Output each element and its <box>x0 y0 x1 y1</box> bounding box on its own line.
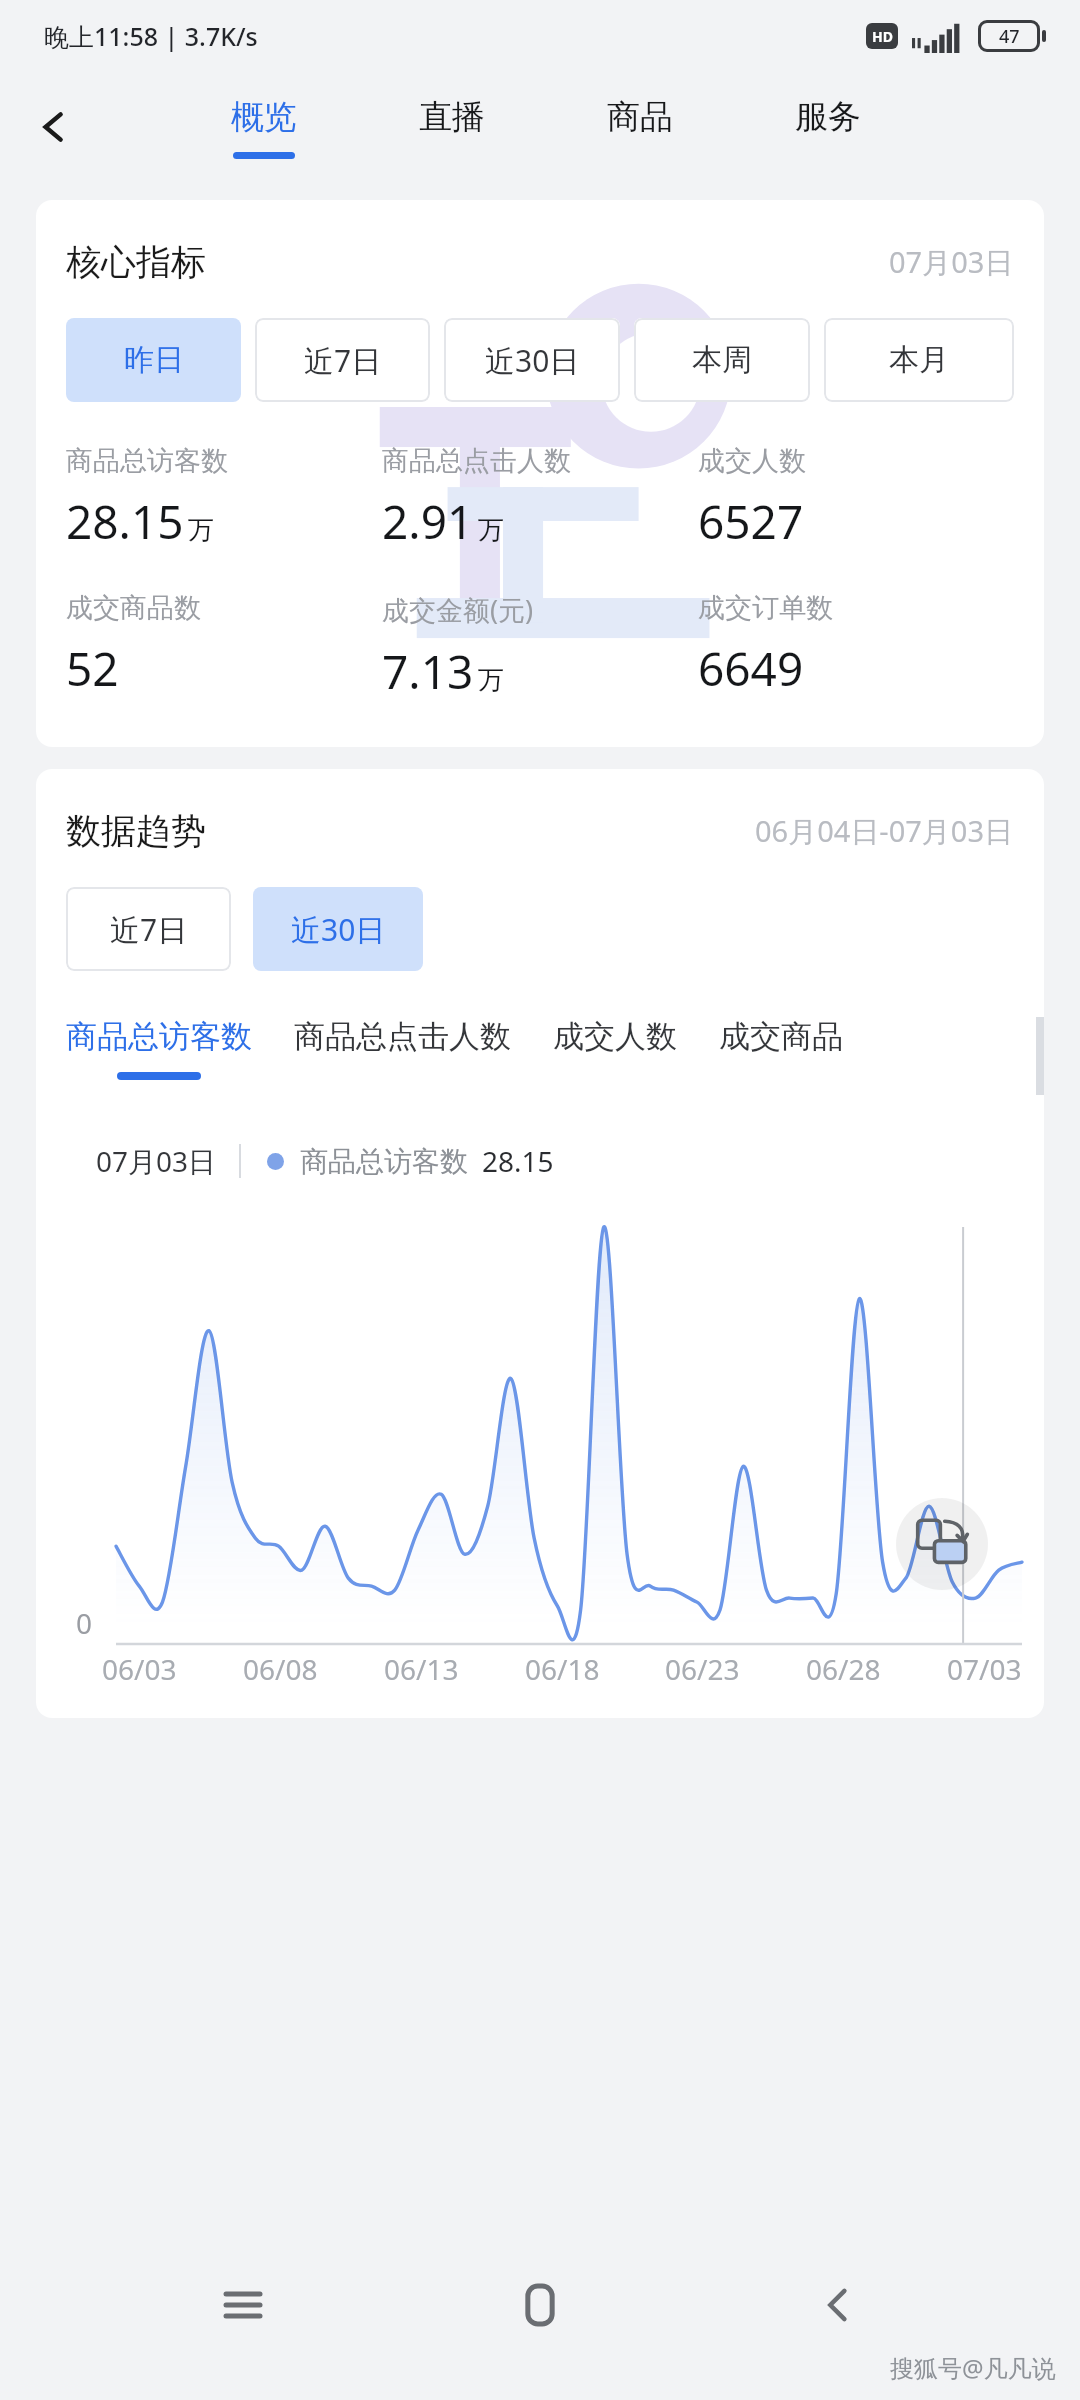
staticText: 成交商品 <box>719 1017 843 1056</box>
staticText: 07月03日 <box>96 1142 217 1180</box>
button[interactable]: 成交商品 <box>719 1017 843 1080</box>
button[interactable]: 近7日 <box>255 318 430 402</box>
button[interactable]: 近7日 <box>66 887 231 971</box>
staticText: 数据趋势 <box>66 809 206 853</box>
staticText: 晚上11:58 | 3.7K/s <box>44 19 258 53</box>
staticText: 成交商品数 <box>66 591 201 625</box>
staticText: 07/03 <box>947 1650 1022 1688</box>
staticText: 万 <box>478 514 504 547</box>
staticText: 47 <box>999 24 1020 49</box>
staticText: 直播 <box>419 96 485 138</box>
staticText: 概览 <box>231 96 297 138</box>
staticText: 搜狐号@凡凡说 <box>890 2351 1056 2384</box>
staticText: 近30日 <box>485 340 580 381</box>
staticText: 本月 <box>889 341 949 379</box>
staticText: 成交人数 <box>698 444 806 478</box>
button[interactable]: Home <box>485 2250 595 2360</box>
button[interactable]: Back <box>783 2250 893 2360</box>
staticText: 06月04日-07月03日 <box>755 811 1014 851</box>
button[interactable]: 成交人数 <box>553 1017 677 1080</box>
button[interactable]: 概览 <box>170 72 358 182</box>
staticText: 商品总点击人数 <box>294 1017 511 1056</box>
button[interactable]: Rotate screen <box>896 1498 988 1590</box>
button[interactable]: 商品 <box>546 72 734 182</box>
staticText: 6527 <box>698 490 804 553</box>
staticText: 6649 <box>698 637 804 700</box>
staticText: 28.15 <box>482 1142 554 1180</box>
staticText: 万 <box>478 664 504 697</box>
staticText: 近7日 <box>110 909 188 950</box>
staticText: 万 <box>188 514 214 547</box>
button[interactable]: 商品总访客数 <box>66 1017 252 1080</box>
staticText: 06/23 <box>665 1650 740 1688</box>
staticText: 本周 <box>692 341 752 379</box>
staticText: 28.15 <box>66 490 184 553</box>
staticText: 商品 <box>607 96 673 138</box>
staticText: 商品总访客数 <box>300 1144 468 1179</box>
staticText: 06/08 <box>243 1650 318 1688</box>
staticText: 2.91 <box>382 490 474 553</box>
button[interactable]: 直播 <box>358 72 546 182</box>
staticText: 近7日 <box>304 340 382 381</box>
button[interactable]: 商品总点击人数 <box>294 1017 511 1080</box>
button[interactable]: 本周 <box>634 318 810 402</box>
staticText: 商品总点击人数 <box>382 444 571 478</box>
staticText: HD <box>872 27 893 46</box>
button[interactable]: Recent apps <box>188 2250 298 2360</box>
staticText: 成交金额(元) <box>382 591 534 628</box>
staticText: 商品总访客数 <box>66 444 228 478</box>
staticText: 成交订单数 <box>698 591 833 625</box>
button[interactable]: 本月 <box>824 318 1014 402</box>
staticText: 成交人数 <box>553 1017 677 1056</box>
staticText: 07月03日 <box>889 242 1014 282</box>
button[interactable]: 近30日 <box>253 887 423 971</box>
staticText: 商品总访客数 <box>66 1017 252 1056</box>
staticText: 06/18 <box>525 1650 600 1688</box>
staticText: 7.13 <box>382 640 474 703</box>
staticText: 06/03 <box>102 1650 177 1688</box>
staticText: 服务 <box>795 96 861 138</box>
button[interactable]: 昨日 <box>66 318 241 402</box>
staticText: 52 <box>66 637 119 700</box>
staticText: 06/13 <box>384 1650 459 1688</box>
staticText: 0 <box>76 1604 93 1642</box>
staticText: 昨日 <box>124 341 184 379</box>
button[interactable]: 近30日 <box>444 318 620 402</box>
staticText: 近30日 <box>291 909 386 950</box>
button[interactable]: Back <box>20 93 88 161</box>
staticText: 06/28 <box>806 1650 881 1688</box>
button[interactable]: 服务 <box>734 72 922 182</box>
staticText: 核心指标 <box>66 240 206 284</box>
